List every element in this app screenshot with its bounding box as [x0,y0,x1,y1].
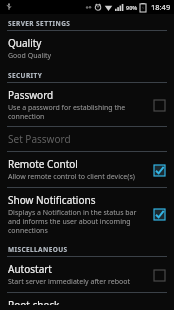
staticText: Quality [8,36,42,50]
staticText: Password [8,88,54,102]
staticText: Displays a Notification in the status ba… [8,208,137,235]
staticText: SECURITY [8,71,43,80]
button[interactable]: Password [150,96,168,114]
staticText: Good Quality [8,51,52,61]
button[interactable]: Password [0,83,174,126]
staticText: SERVER SETTINGS [8,19,71,28]
staticText: Use a password for establishing the conn… [8,103,126,121]
button[interactable]: Autostart [0,257,174,292]
staticText: Autostart [8,262,52,276]
button[interactable]: Remote Contol [150,161,168,179]
button[interactable]: Root check [0,293,174,310]
button[interactable]: Autostart [150,266,168,284]
staticText: Show Notifications [8,193,96,207]
staticText: 90% [126,4,138,11]
staticText: 18:49 [151,2,171,12]
staticText: MISCELLANEOUS [8,245,68,254]
button[interactable]: Set Password [0,127,174,151]
button[interactable]: Show Notifications [150,205,168,223]
staticText: Set Password [8,132,71,146]
staticText: Remote Contol [8,157,78,171]
staticText: Root check [8,298,60,305]
button[interactable]: Quality [0,31,174,66]
staticText: Allow remote control to client device(s) [8,172,135,182]
button[interactable]: Remote Contol [0,152,174,187]
staticText: Start server immediately after reboot [8,277,131,287]
button[interactable]: Show Notifications [0,188,174,240]
